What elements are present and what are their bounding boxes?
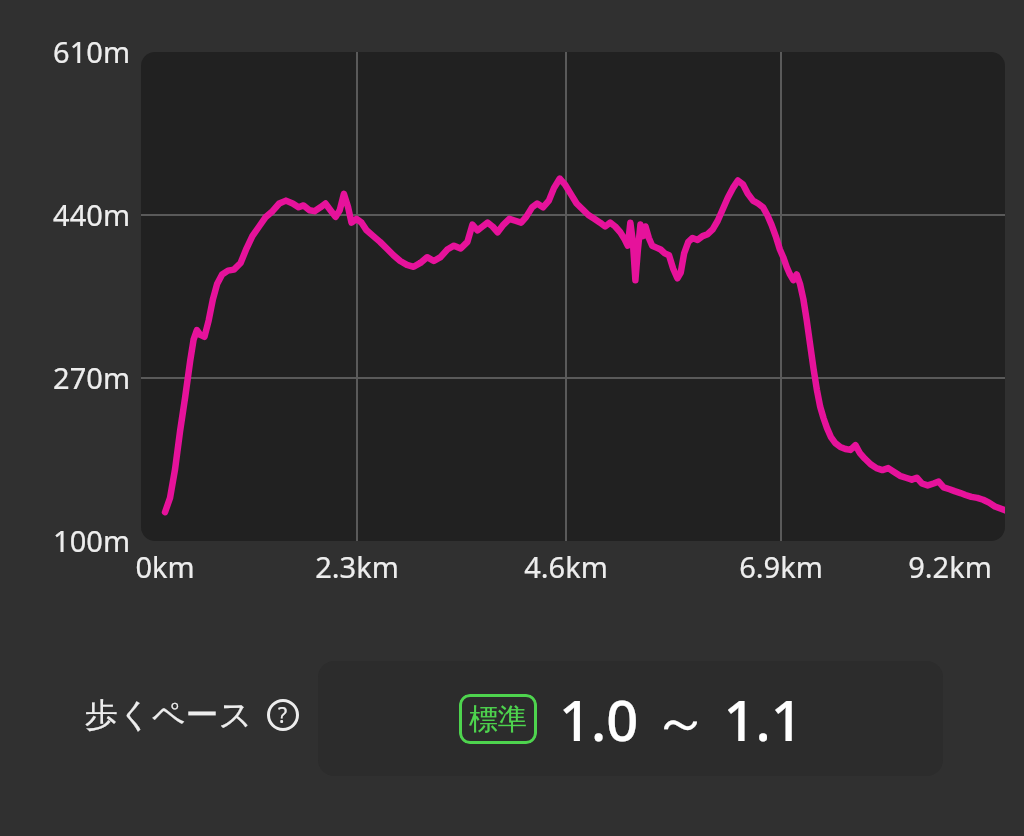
staticText: 0km — [75, 547, 255, 586]
staticText: 440m — [0, 195, 130, 234]
staticText: 100m — [0, 521, 130, 560]
staticText: 610m — [0, 32, 130, 71]
staticText: 標準 — [469, 701, 527, 738]
staticText: 1.0 ～ 1.1 — [559, 681, 803, 757]
staticText: 2.3km — [267, 547, 447, 586]
button[interactable]: 標準 — [318, 661, 943, 776]
staticText: 歩くペース — [85, 694, 253, 736]
staticText: 6.9km — [691, 547, 871, 586]
staticText: 270m — [0, 358, 130, 397]
staticText: ? — [278, 701, 288, 730]
button[interactable]: 歩くペース — [85, 694, 299, 736]
other: ヘルプ — [267, 699, 299, 731]
staticText: 4.6km — [476, 547, 656, 586]
staticText: 9.2km — [860, 547, 1024, 586]
